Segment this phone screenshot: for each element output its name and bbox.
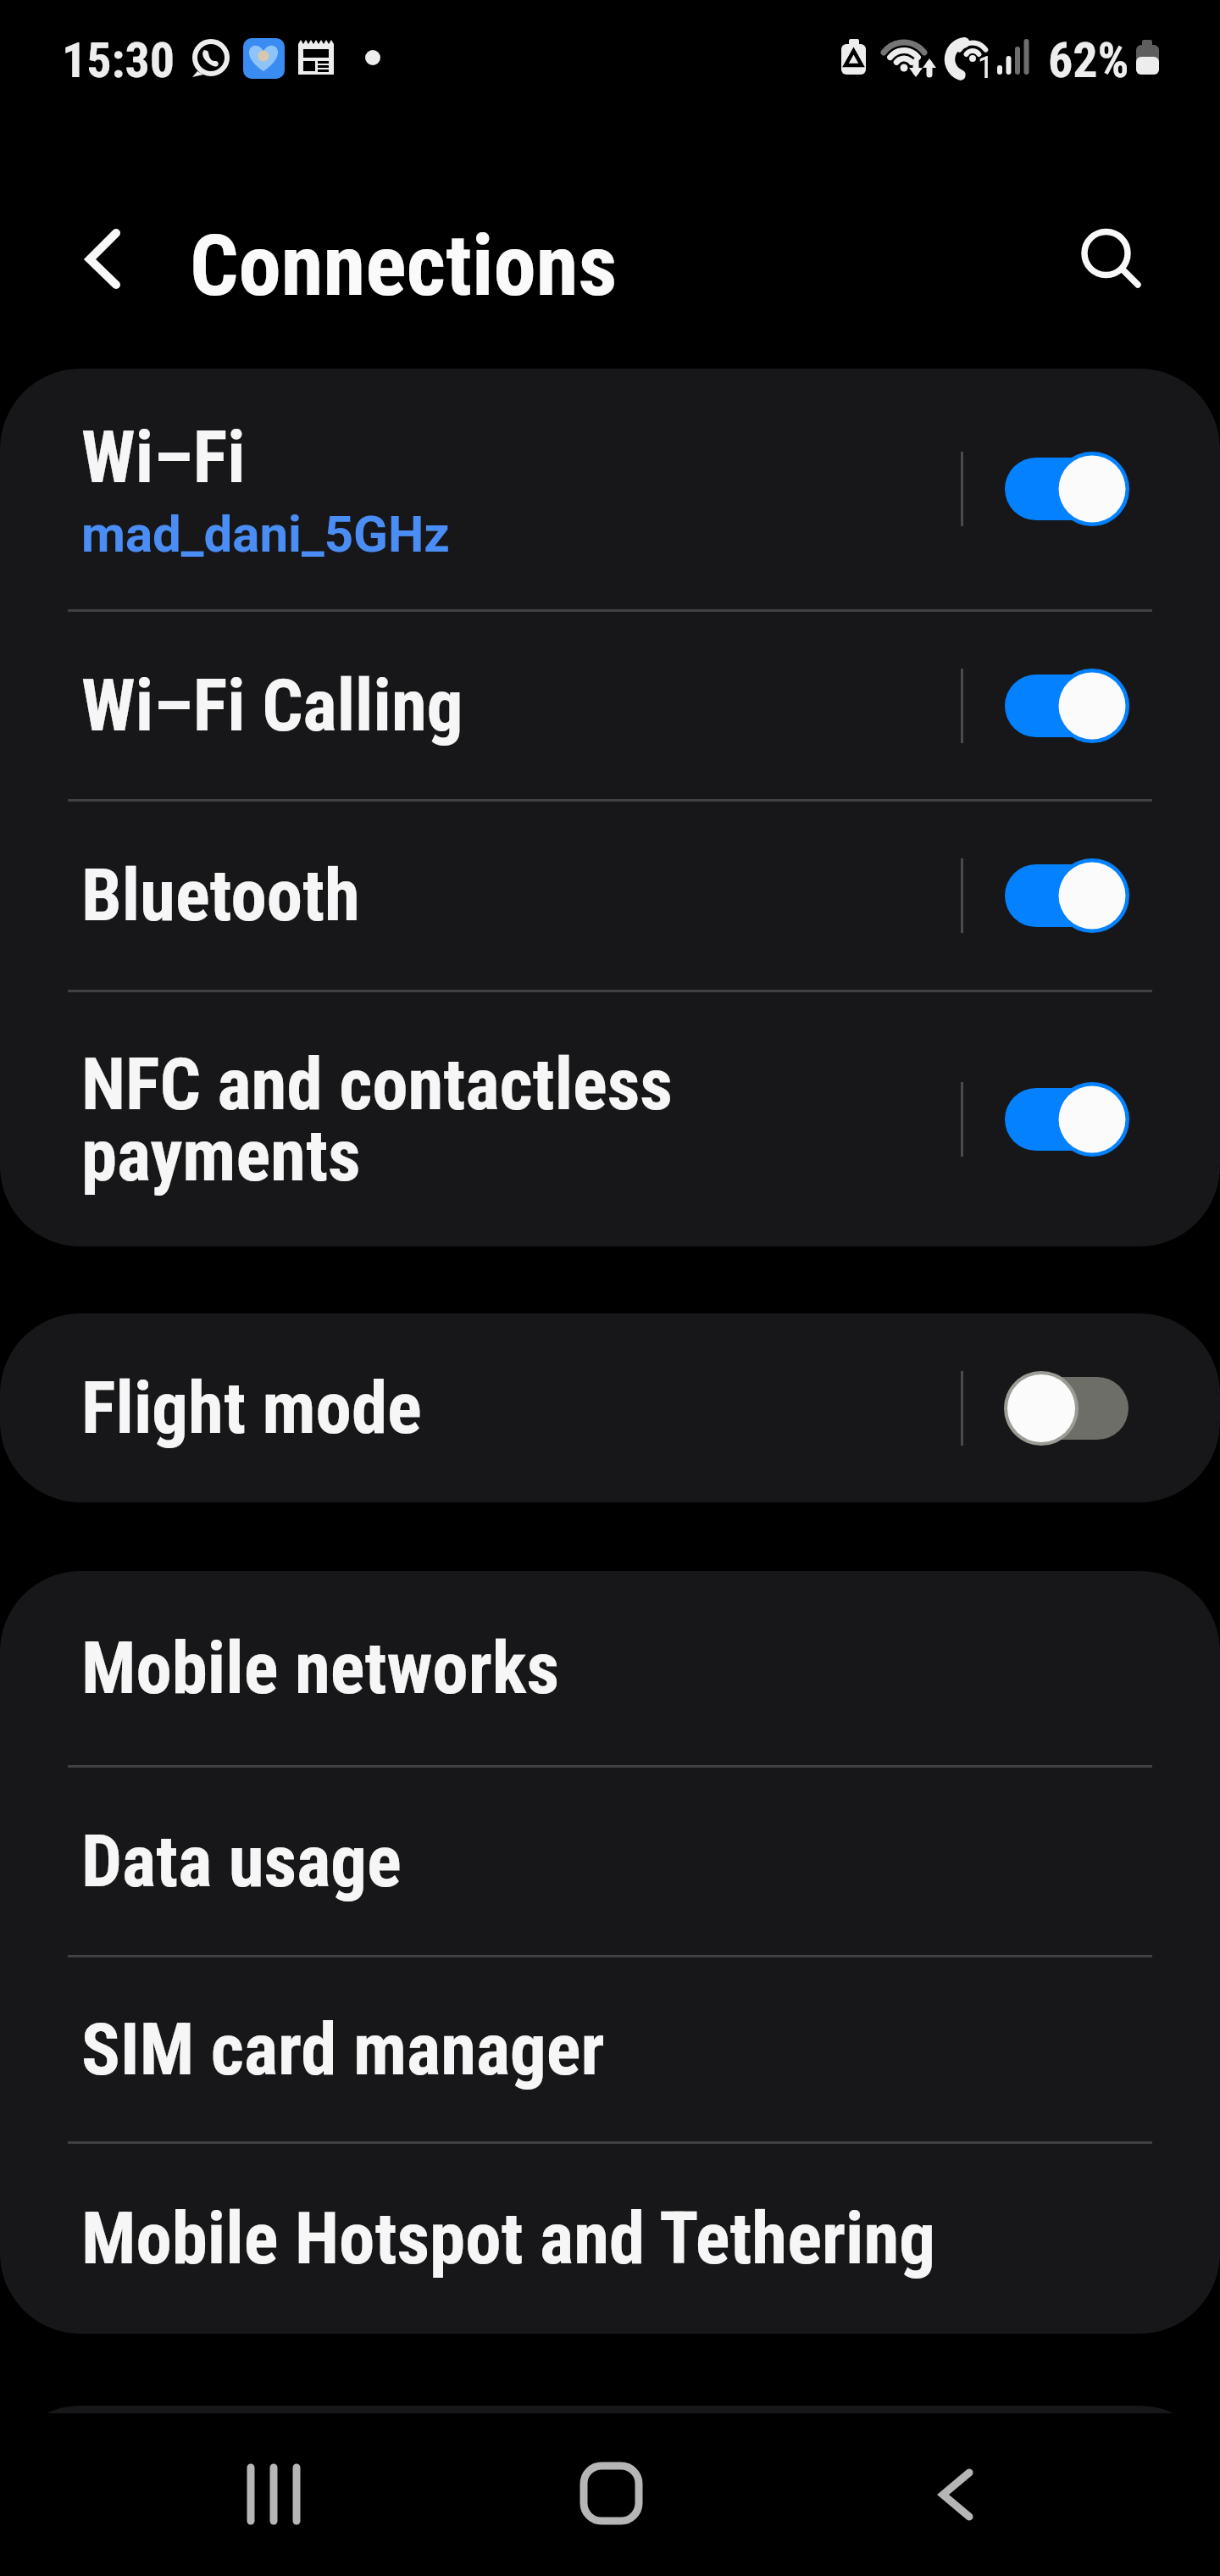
button[interactable]: Mobile Hotspot and Tethering [0, 2144, 1220, 2334]
button[interactable]: Mobile networks [0, 1571, 1220, 1765]
staticText: NFC and contactless payments [81, 1042, 673, 1197]
button[interactable]: Data usage [0, 1768, 1220, 1955]
staticText: mad_dani_5GHz [81, 504, 450, 563]
staticText: 1 [978, 49, 994, 86]
button[interactable]: SIM card manager [0, 1957, 1220, 2141]
staticText: SIM card manager [81, 2007, 605, 2092]
button[interactable]: Home [546, 2431, 674, 2558]
button[interactable]: Turn on [982, 1353, 1151, 1463]
button[interactable]: Wi–Fi Calling [0, 612, 1220, 799]
button[interactable]: Navigate up [39, 208, 141, 310]
button[interactable]: Turn off [982, 841, 1151, 951]
staticText: Bluetooth [81, 853, 360, 938]
button[interactable]: Wi–Fi [0, 369, 1220, 609]
button[interactable]: Bluetooth [0, 802, 1220, 990]
button[interactable]: NFC and contactless payments [0, 992, 1220, 1246]
staticText: Mobile Hotspot and Tethering [81, 2196, 936, 2281]
button[interactable]: Turn off [982, 1064, 1151, 1174]
staticText: 62% [1048, 31, 1129, 89]
staticText: Wi–Fi Calling [81, 663, 463, 748]
button[interactable]: Turn off [982, 651, 1151, 761]
staticText: Connections [190, 215, 618, 315]
button[interactable]: Flight mode [0, 1313, 1220, 1502]
button[interactable]: Recent apps [210, 2431, 337, 2558]
staticText: Flight mode [81, 1366, 422, 1451]
staticText: 15:30 [62, 31, 175, 89]
staticText: Data usage [81, 1819, 402, 1904]
button[interactable]: Turn off [982, 434, 1151, 544]
staticText: Mobile networks [81, 1626, 559, 1711]
button[interactable]: Back [884, 2431, 1011, 2558]
button[interactable]: Search [1055, 203, 1156, 304]
staticText: Wi–Fi [81, 415, 246, 500]
